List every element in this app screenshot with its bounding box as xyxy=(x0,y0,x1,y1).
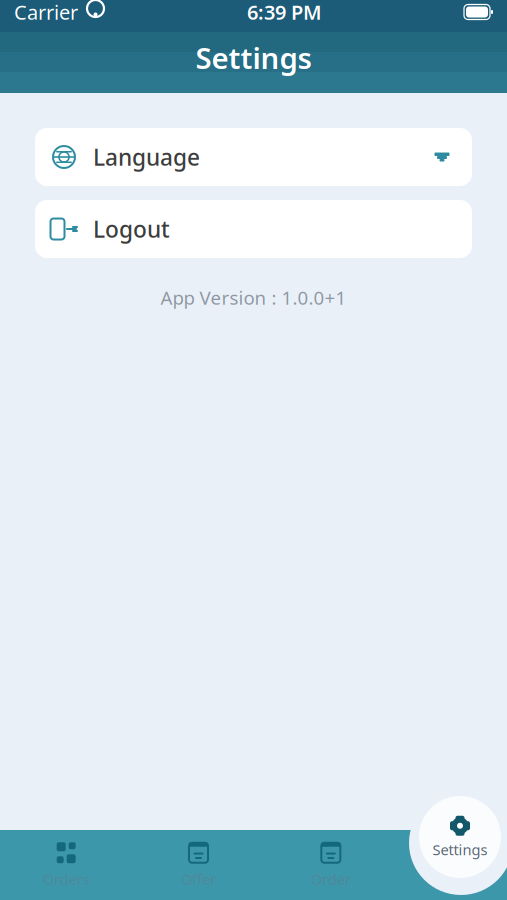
staticText: App Version : 1.0.0+1 xyxy=(160,285,346,310)
button[interactable]: Language xyxy=(35,128,472,186)
staticText: Language xyxy=(93,142,200,172)
staticText: Settings xyxy=(432,840,487,859)
button[interactable]: Offer xyxy=(132,830,265,900)
button[interactable]: Settings xyxy=(419,796,501,878)
button[interactable]: Orders xyxy=(0,830,132,900)
staticText: Offer xyxy=(181,869,216,889)
staticText: Carrier xyxy=(14,0,78,25)
button[interactable]: Logout xyxy=(35,200,472,258)
staticText: Logout xyxy=(93,214,170,244)
staticText: Order xyxy=(311,869,351,889)
staticText: 6:39 PM xyxy=(247,0,322,25)
staticText: Orders xyxy=(43,869,90,889)
button[interactable]: Order xyxy=(265,830,397,900)
staticText: Settings xyxy=(195,38,311,77)
